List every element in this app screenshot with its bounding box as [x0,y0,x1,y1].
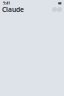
staticText: Claude [2,5,24,14]
staticText: 9:41 [3,0,10,6]
staticText: ▮▮▮ [58,1,61,4]
